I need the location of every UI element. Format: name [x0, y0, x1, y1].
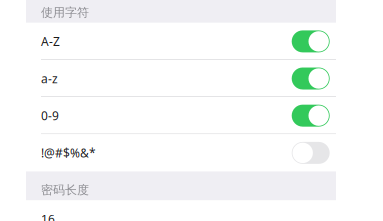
- staticText: a-z: [41, 70, 58, 86]
- staticText: 16: [41, 211, 55, 221]
- button[interactable]: A-Z: [26, 23, 336, 60]
- staticText: !@#$%&*: [41, 145, 96, 161]
- staticText: 使用字符: [41, 5, 89, 20]
- staticText: 0-9: [41, 108, 59, 124]
- button[interactable]: a-z: [26, 60, 336, 97]
- button[interactable]: 0-9: [26, 97, 336, 134]
- button[interactable]: !@#$%&*: [26, 134, 336, 171]
- button[interactable]: 16: [26, 200, 336, 221]
- staticText: A-Z: [41, 33, 60, 49]
- staticText: 密码长度: [41, 183, 89, 197]
